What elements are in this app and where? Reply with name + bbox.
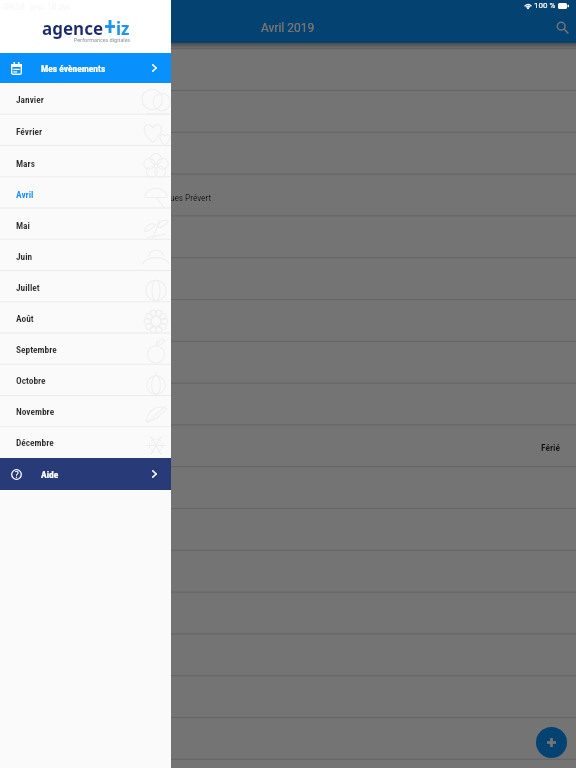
button[interactable]: Novembre xyxy=(0,396,171,427)
button[interactable]: Mars xyxy=(0,147,171,179)
button[interactable]: Décembre xyxy=(0,427,171,458)
button[interactable]: Mes évènements xyxy=(0,53,171,83)
button[interactable]: Août xyxy=(0,303,171,334)
staticText: Aide xyxy=(41,469,59,480)
button[interactable]: Juin xyxy=(0,241,171,272)
staticText: Novembre xyxy=(16,406,55,417)
button[interactable] xyxy=(0,636,576,678)
staticText: Juillet xyxy=(16,282,40,293)
button[interactable]: Juillet xyxy=(0,272,171,303)
button[interactable]: ? xyxy=(0,458,171,490)
button[interactable] xyxy=(0,678,576,720)
button[interactable]: Férié xyxy=(0,426,576,468)
staticText: Jacques Prévert xyxy=(152,193,212,203)
staticText: Octobre xyxy=(16,375,46,386)
button[interactable]: Janvier xyxy=(0,83,171,115)
staticText: Performances digitales xyxy=(74,36,131,43)
staticText: Septembre xyxy=(16,344,57,355)
button[interactable]: Search xyxy=(546,11,576,43)
button[interactable]: Septembre xyxy=(0,334,171,365)
button[interactable]: Jacques Prévert xyxy=(0,174,576,216)
staticText: Juin xyxy=(16,251,33,262)
button[interactable] xyxy=(0,510,576,552)
staticText: iz xyxy=(116,17,130,40)
button[interactable]: Mai xyxy=(0,210,171,241)
staticText: Mars xyxy=(16,158,35,169)
button[interactable] xyxy=(0,342,576,384)
staticText: Août xyxy=(16,313,34,324)
staticText: Mai xyxy=(16,220,30,231)
button[interactable]: Avril xyxy=(0,179,171,210)
button[interactable]: Add event xyxy=(536,727,567,758)
button[interactable] xyxy=(0,384,576,426)
staticText: Avril xyxy=(16,189,34,200)
staticText: Janvier xyxy=(16,94,44,105)
button[interactable] xyxy=(0,552,576,594)
staticText: Février xyxy=(16,126,43,137)
button[interactable]: Février xyxy=(0,115,171,147)
button[interactable] xyxy=(0,300,576,342)
staticText: Férié xyxy=(541,442,561,453)
staticText: Avril 2019 xyxy=(261,21,315,35)
staticText: 100 % xyxy=(534,1,556,10)
staticText: agence xyxy=(42,17,104,40)
staticText: ? xyxy=(15,469,19,480)
button[interactable] xyxy=(0,258,576,300)
button[interactable] xyxy=(0,762,576,768)
button[interactable]: Octobre xyxy=(0,365,171,396)
button[interactable] xyxy=(0,90,576,132)
button[interactable] xyxy=(0,216,576,258)
staticText: Mes évènements xyxy=(41,63,106,74)
button[interactable] xyxy=(0,48,576,90)
button[interactable] xyxy=(0,468,576,510)
button[interactable] xyxy=(0,132,576,174)
staticText: Décembre xyxy=(16,437,54,448)
button[interactable] xyxy=(0,594,576,636)
button[interactable] xyxy=(0,720,576,762)
